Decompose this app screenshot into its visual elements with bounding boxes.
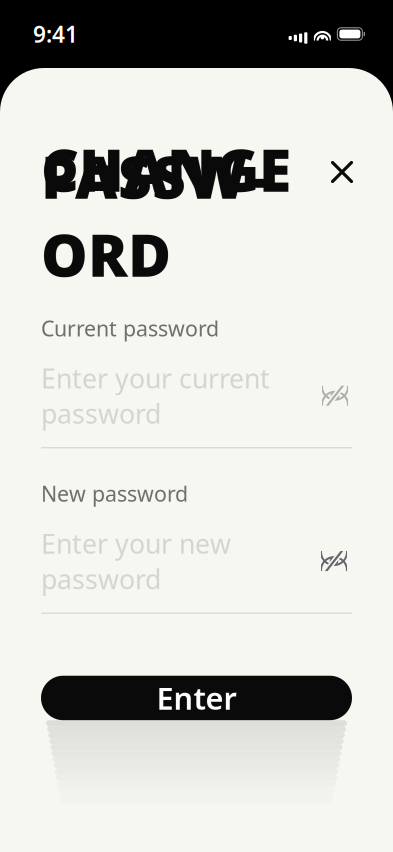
button[interactable]: Close [318,148,366,196]
staticText: 9:41 [33,19,78,49]
staticText: Current password [41,314,219,342]
button[interactable]: Show current password [318,381,352,411]
staticText: Enter your new password [41,526,231,596]
staticText: Enter your current password [41,360,270,431]
staticText: CHANGE [41,130,291,208]
staticText: PASSWORD [41,137,266,293]
staticText: New password [41,479,188,508]
button[interactable]: Show new password [318,546,352,576]
staticText: Enter [156,678,236,718]
button[interactable]: Enter [41,676,352,720]
